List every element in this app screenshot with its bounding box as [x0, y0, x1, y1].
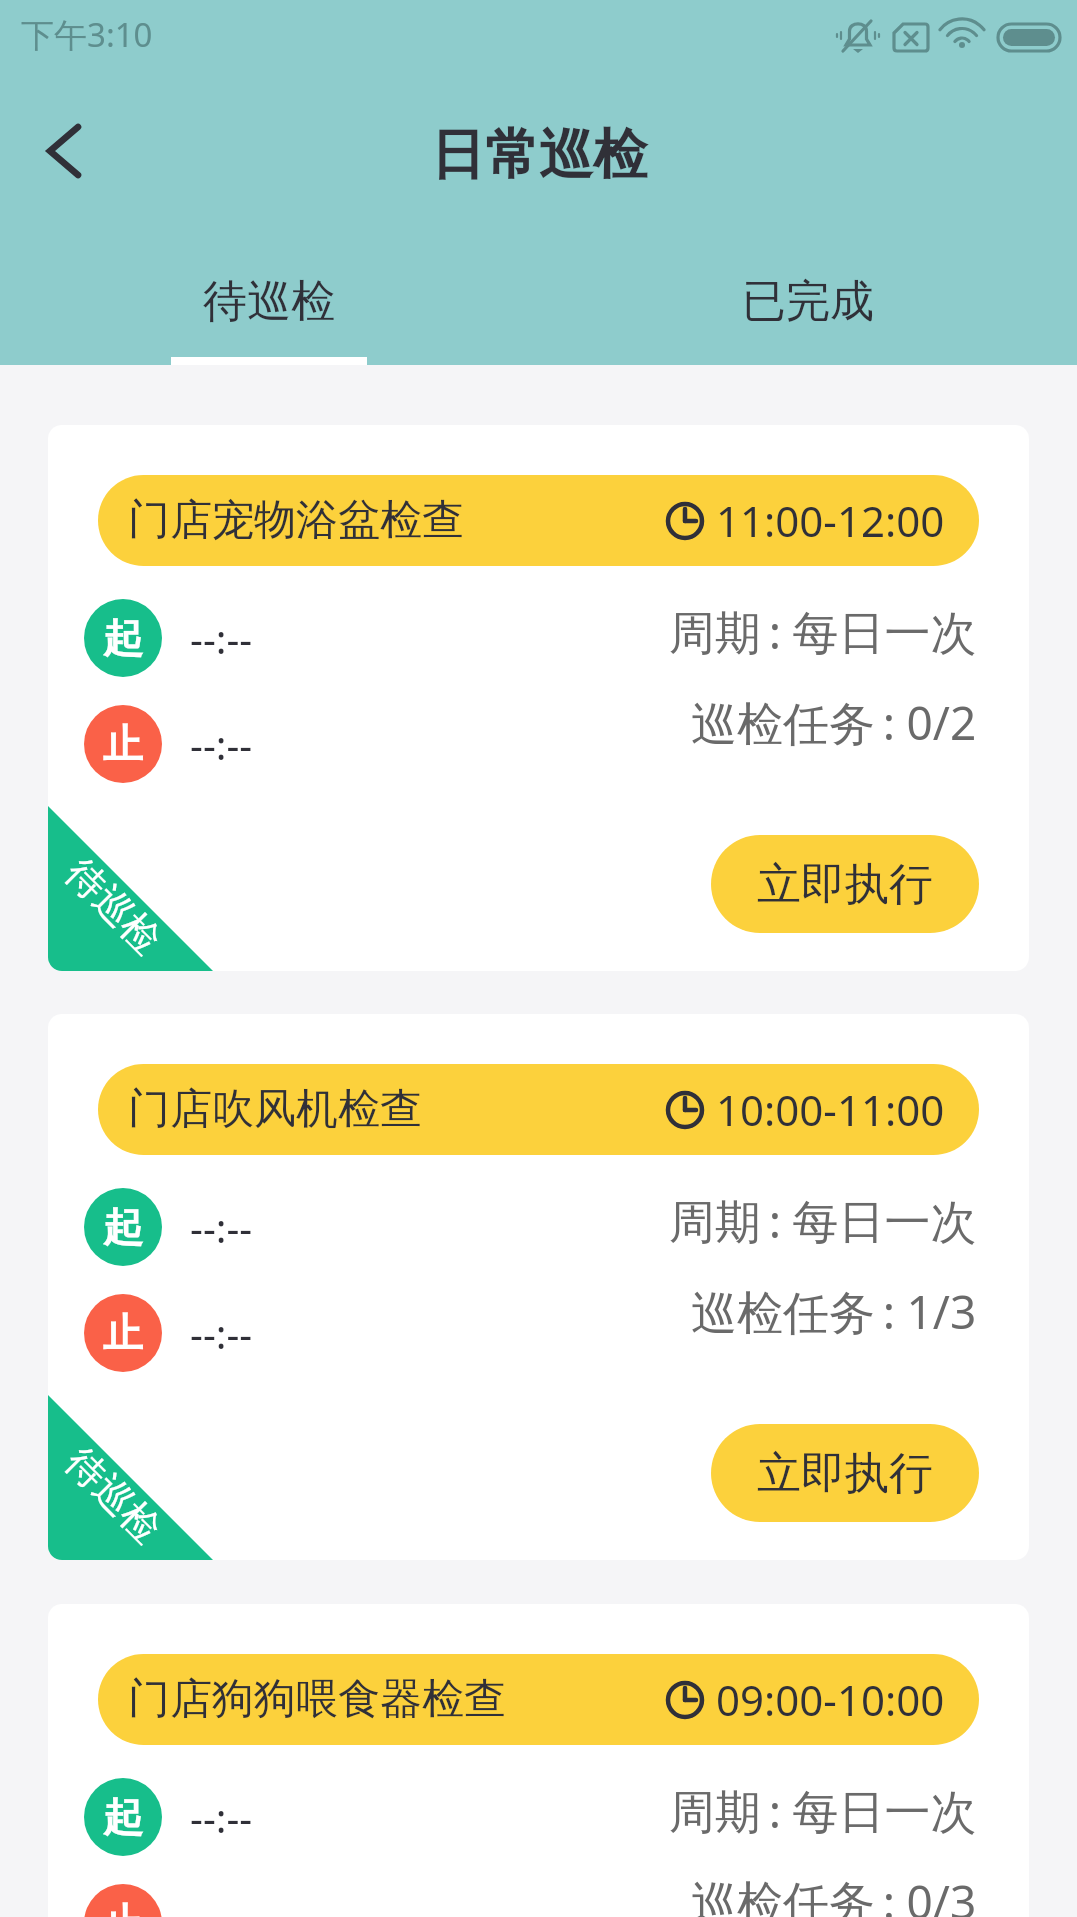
staticText: 11:00-12:00	[716, 492, 945, 549]
button[interactable]: 待巡检	[48, 1014, 1029, 1560]
staticText: 门店吹风机检查	[128, 1083, 422, 1136]
staticText: 巡检任务 : 0/3	[691, 1870, 977, 1917]
button[interactable]: 门店宠物浴盆检查	[98, 475, 979, 566]
staticText: --:--	[190, 717, 253, 771]
staticText: 待巡检	[56, 1438, 171, 1552]
button[interactable]: 立即执行	[711, 1424, 979, 1522]
button[interactable]: 立即执行	[711, 835, 979, 933]
staticText: 周期 : 每日一次	[669, 1189, 977, 1252]
staticText: 起	[103, 1792, 143, 1842]
staticText: 待巡检	[56, 849, 171, 963]
staticText: --:--	[190, 1790, 253, 1844]
staticText: 下午3:10	[21, 12, 153, 57]
staticText: 周期 : 每日一次	[669, 1779, 977, 1842]
button[interactable]: 门店吹风机检查	[98, 1064, 979, 1155]
button[interactable]: 待巡检	[0, 260, 538, 365]
staticText: 止	[103, 719, 143, 769]
staticText: 待巡检	[203, 274, 335, 329]
staticText: 止	[103, 1898, 143, 1917]
button[interactable]: 已完成	[538, 260, 1077, 365]
staticText: 起	[103, 613, 143, 663]
staticText: --:--	[190, 1200, 253, 1254]
staticText: 已完成	[742, 274, 874, 329]
staticText: 门店宠物浴盆检查	[128, 494, 464, 547]
staticText: 巡检任务 : 0/2	[691, 691, 977, 754]
staticText: 09:00-10:00	[716, 1671, 945, 1728]
staticText: 起	[103, 1202, 143, 1252]
staticText: 日常巡检	[431, 121, 647, 189]
button[interactable]: 待巡检	[48, 425, 1029, 971]
staticText: 止	[103, 1308, 143, 1358]
staticText: 立即执行	[757, 1446, 933, 1501]
staticText: --:--	[190, 611, 253, 665]
staticText: --:--	[190, 1306, 253, 1360]
button[interactable]: Back	[20, 110, 102, 192]
button[interactable]: 门店狗狗喂食器检查	[98, 1654, 979, 1745]
staticText: 10:00-11:00	[716, 1081, 945, 1138]
staticText: 巡检任务 : 1/3	[691, 1280, 977, 1343]
button[interactable]: 待巡检	[48, 1604, 1029, 1917]
staticText: 门店狗狗喂食器检查	[128, 1673, 506, 1726]
staticText: 周期 : 每日一次	[669, 600, 977, 663]
staticText: 立即执行	[757, 857, 933, 912]
